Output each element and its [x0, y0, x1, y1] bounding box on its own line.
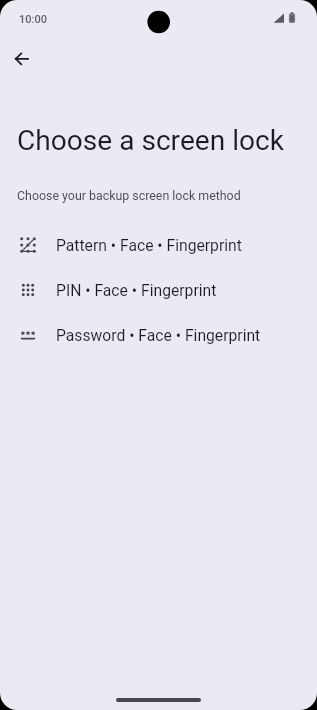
- staticText: PIN • Face • Fingerprint: [56, 281, 217, 299]
- staticText: Pattern • Face • Fingerprint: [56, 236, 242, 254]
- staticText: 10:00: [19, 13, 47, 26]
- button[interactable]: PIN • Face • Fingerprint: [0, 267, 317, 312]
- staticText: Password • Face • Fingerprint: [56, 326, 261, 344]
- button[interactable]: Back: [4, 40, 44, 80]
- button[interactable]: Password • Face • Fingerprint: [0, 312, 317, 357]
- staticText: Choose a screen lock: [17, 124, 284, 157]
- staticText: Choose your backup screen lock method: [17, 188, 241, 203]
- button[interactable]: Pattern • Face • Fingerprint: [0, 222, 317, 267]
